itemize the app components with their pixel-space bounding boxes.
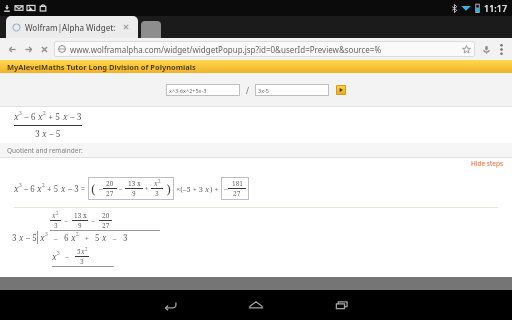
staticText: – [224,184,228,194]
staticText: 181 [232,179,243,188]
staticText: 2 [42,182,45,189]
staticText: 27 [102,221,110,230]
staticText: – 5 [24,232,37,243]
staticText: x [61,183,66,194]
button[interactable]: Close tab [121,22,131,32]
staticText: 5 [77,247,81,256]
staticText: Wolfram|Alpha Widget: [25,22,121,33]
staticText: 3 [19,182,22,189]
staticText: 5 [95,232,102,243]
staticText: x [63,111,68,123]
button[interactable]: Voice search [478,40,494,58]
staticText: – 6 [22,183,37,194]
staticText: 2 [43,110,46,117]
staticText: x^3-6x^2+5x-3 [169,87,207,94]
staticText: 3x-5 [258,87,269,94]
button[interactable]: www.wolframalpha.com/widget/widgetPopup.… [54,41,475,57]
button[interactable]: Bookmark [462,45,471,54]
staticText: www.wolframalpha.com/widget/widgetPopup.… [70,44,459,55]
button[interactable]: Stop loading [36,40,52,58]
staticText: + 5 [45,183,61,194]
staticText: – 5 [47,128,61,140]
staticText: + [79,233,95,243]
staticText: x [19,232,24,243]
staticText: – [107,233,123,243]
staticText: 3 [12,232,19,243]
button[interactable]: Back [127,290,213,320]
staticText: ) [163,180,171,198]
staticText: 3 [45,231,48,238]
staticText: x [102,232,107,243]
staticText: 3 [57,250,60,257]
staticText: 3 [54,221,58,230]
staticText: x [38,111,43,123]
staticText: 9 [78,221,82,230]
staticText: + [143,184,151,194]
staticText: 3 [123,232,128,243]
staticText: 11:17 [484,2,508,14]
staticText: – [60,252,75,262]
button[interactable]: More options [494,40,508,58]
staticText: + 5 [46,111,63,123]
staticText: – 3 [68,111,82,123]
button[interactable]: Wolfram|Alpha Widget: [6,16,138,38]
staticText: MyAlevelMaths Tutor Long Division of Pol… [7,62,196,72]
staticText: 3 [80,257,84,266]
staticText: x [40,232,45,244]
staticText: x [205,184,210,194]
staticText: x [37,183,42,195]
staticText: 20 [102,211,110,220]
staticText: 2 [56,210,59,216]
staticText: x [71,232,76,244]
staticText: – [48,233,64,243]
button[interactable]: Back [4,40,20,58]
staticText: x [14,183,19,195]
button[interactable]: x^3-6x^2+5x-3 [166,84,240,96]
staticText: – 3 = [66,183,88,194]
staticText: 9 [132,189,136,198]
button[interactable]: Home [213,290,299,320]
button[interactable]: Submit [336,85,346,95]
staticText: Quotient and remainder: [7,146,83,155]
staticText: x [52,211,56,220]
button[interactable]: 3x-5 [255,84,329,96]
staticText: 13 x [74,211,87,220]
button[interactable]: Hide steps [471,159,512,168]
staticText: – [88,216,99,225]
staticText: – 6 [22,111,38,123]
staticText: ( [91,180,99,198]
staticText: x [154,179,158,188]
staticText: / [246,85,249,96]
staticText: x [14,111,19,123]
staticText: 6 [64,232,71,243]
staticText: 2 [76,231,79,238]
button[interactable]: Recent apps [299,290,385,320]
staticText: 3 [155,189,159,198]
staticText: x [42,128,47,140]
staticText: 3 [19,110,22,117]
staticText: x [52,251,57,263]
staticText: – [99,184,103,194]
staticText: – [117,184,125,194]
staticText: ×(–5 + 3 [174,184,205,194]
staticText: 2 [158,178,161,184]
staticText: 13 x [128,179,141,188]
staticText: 27 [106,189,114,198]
staticText: – [61,216,72,225]
button[interactable]: Forward [20,40,36,58]
button[interactable]: New tab [141,21,161,38]
staticText: x [81,247,85,256]
staticText: 27 [233,189,241,198]
staticText: ) + [210,184,221,194]
staticText: 3 [35,128,42,140]
staticText: 20 [106,179,114,188]
staticText: 2 [85,246,88,252]
